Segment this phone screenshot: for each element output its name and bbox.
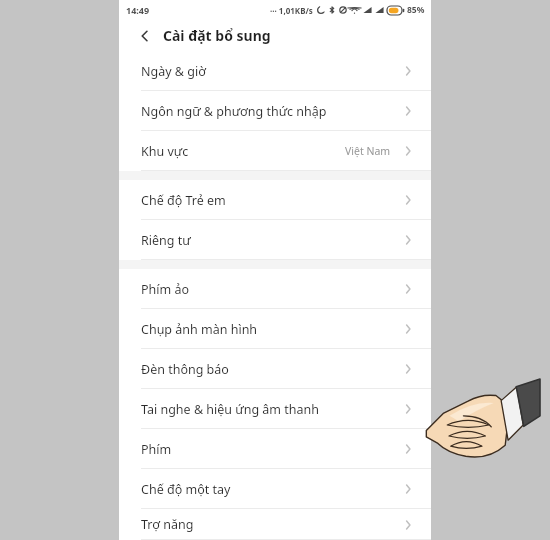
button[interactable]: Tai nghe & hiệu ứng âm thanh [119, 389, 431, 429]
staticText: Chế độ Trẻ em [141, 192, 226, 209]
button[interactable]: Trợ năng [119, 509, 431, 540]
button[interactable]: Chụp ảnh màn hình [119, 309, 431, 349]
staticText: ··· 1,01KB/s [270, 5, 313, 16]
staticText: Đèn thông báo [141, 361, 229, 378]
staticText: 85% [407, 4, 425, 16]
staticText: Chế độ một tay [141, 481, 231, 498]
staticText: 14:49 [126, 4, 150, 16]
button[interactable]: Chế độ Trẻ em [119, 180, 431, 220]
button[interactable]: Đèn thông báo [119, 349, 431, 389]
button[interactable]: Chế độ một tay [119, 469, 431, 509]
staticText: Ngày & giờ [141, 63, 206, 80]
staticText: Việt Nam [345, 144, 391, 158]
button[interactable]: Back [133, 24, 157, 48]
staticText: Tai nghe & hiệu ứng âm thanh [141, 401, 319, 418]
button[interactable]: Ngày & giờ [119, 51, 431, 91]
staticText: Phím ảo [141, 281, 190, 298]
staticText: Ngôn ngữ & phương thức nhập [141, 103, 327, 120]
staticText: Trợ năng [141, 516, 194, 533]
staticText: Chụp ảnh màn hình [141, 321, 258, 338]
staticText: Khu vực [141, 143, 189, 160]
staticText: Riêng tư [141, 232, 191, 249]
staticText: Phím [141, 441, 172, 458]
button[interactable]: Ngôn ngữ & phương thức nhập [119, 91, 431, 131]
staticText: Cài đặt bổ sung [163, 26, 271, 45]
button[interactable]: Phím [119, 429, 431, 469]
button[interactable]: Riêng tư [119, 220, 431, 260]
button[interactable]: Khu vực [119, 131, 431, 171]
button[interactable]: Phím ảo [119, 269, 431, 309]
